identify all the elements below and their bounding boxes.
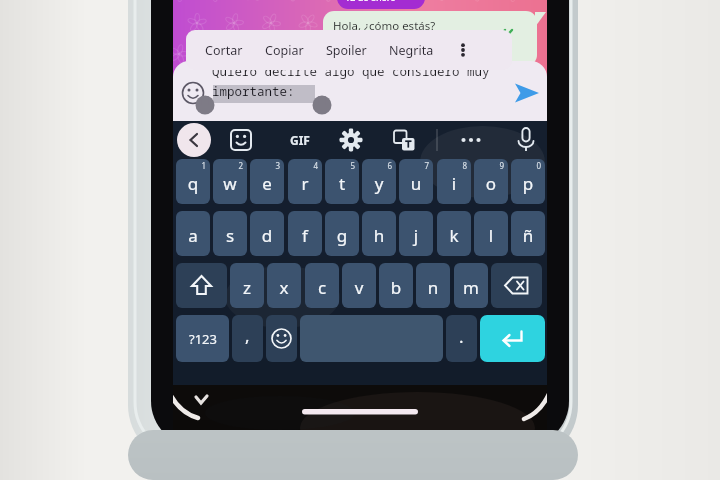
button[interactable]: x [267, 263, 301, 308]
staticText: 7 [399, 160, 429, 171]
button[interactable]: j [399, 211, 433, 256]
button[interactable]: a [176, 211, 210, 256]
staticText: q [176, 172, 210, 195]
staticText: 8 [437, 160, 467, 171]
button[interactable]: h [362, 211, 396, 256]
button[interactable]: Stickers [228, 127, 254, 153]
staticText: 9 [474, 160, 504, 171]
button[interactable]: w [213, 159, 247, 204]
staticText: Copiar [265, 42, 304, 59]
staticText: . [459, 325, 464, 348]
staticText: GIF [290, 132, 310, 148]
staticText: e [250, 172, 284, 195]
staticText: Spoiler [326, 42, 367, 59]
button[interactable]: z [230, 263, 264, 308]
staticText: 1 [176, 160, 206, 171]
button[interactable]: Copiar [254, 30, 315, 70]
button[interactable]: GIF [282, 127, 318, 153]
button[interactable]: y [362, 159, 396, 204]
staticText: y [362, 172, 396, 195]
button[interactable]: Traducir [391, 127, 417, 153]
staticText: g [325, 224, 359, 247]
button[interactable]: l [474, 211, 508, 256]
button[interactable]: Emoji [266, 315, 297, 362]
button[interactable]: ?123 [176, 315, 229, 362]
staticText: d [250, 224, 284, 247]
button[interactable]: Mayúsculas [176, 263, 227, 308]
button[interactable]: Enviar [480, 315, 545, 362]
staticText: s [213, 224, 247, 247]
staticText: v [342, 276, 376, 299]
button[interactable]: m [454, 263, 488, 308]
staticText: b [379, 276, 413, 299]
staticText: 12 de enero [345, 0, 396, 3]
staticText: p [511, 172, 545, 195]
button[interactable]: , [232, 315, 263, 362]
staticText: 0 [511, 160, 541, 171]
staticText: l [474, 224, 508, 247]
staticText: ?123 [189, 330, 217, 348]
staticText: a [176, 224, 210, 247]
button[interactable]: k [437, 211, 471, 256]
staticText: r [288, 172, 322, 195]
staticText: u [399, 172, 433, 195]
button[interactable]: d [250, 211, 284, 256]
button[interactable]: g [325, 211, 359, 256]
button[interactable]: Ajustes del teclado [338, 127, 364, 153]
staticText: 6 [362, 160, 392, 171]
staticText: z [230, 276, 264, 299]
button[interactable]: n [416, 263, 450, 308]
staticText: 5 [325, 160, 355, 171]
button[interactable]: q [176, 159, 210, 204]
staticText: t [325, 172, 359, 195]
button[interactable]: Dictado por voz [513, 126, 539, 152]
button[interactable]: v [342, 263, 376, 308]
button[interactable]: i [437, 159, 471, 204]
staticText: o [474, 172, 508, 195]
staticText: w [213, 172, 247, 195]
button[interactable]: t [325, 159, 359, 204]
button[interactable]: Más opciones [445, 30, 481, 70]
button[interactable]: e [250, 159, 284, 204]
button[interactable]: . [446, 315, 477, 362]
staticText: h [362, 224, 396, 247]
staticText: Negrita [389, 42, 434, 59]
staticText: f [288, 224, 322, 247]
button[interactable]: Spoiler [315, 30, 378, 70]
button[interactable]: Espacio [300, 315, 443, 362]
staticText: importante: [212, 83, 295, 100]
staticText: n [416, 276, 450, 299]
staticText: 2 [213, 160, 243, 171]
staticText: 4 [288, 160, 318, 171]
staticText: j [399, 224, 433, 247]
button[interactable]: c [305, 263, 339, 308]
staticText: , [245, 324, 250, 347]
button[interactable]: Más [458, 127, 484, 153]
button[interactable]: s [213, 211, 247, 256]
button[interactable]: Cortar [194, 30, 254, 70]
button[interactable]: b [379, 263, 413, 308]
button[interactable]: p [511, 159, 545, 204]
button[interactable]: Borrar [491, 263, 542, 308]
staticText: Hola, ¿cómo estás? [333, 18, 436, 34]
staticText: c [305, 276, 339, 299]
button[interactable]: r [288, 159, 322, 204]
staticText: k [437, 224, 471, 247]
staticText: Quiero decirte algo que considero muy [212, 63, 490, 80]
button[interactable]: Negrita [378, 30, 445, 70]
button[interactable]: Atrás [177, 123, 211, 157]
staticText: 3 [250, 160, 280, 171]
button[interactable]: u [399, 159, 433, 204]
staticText: Cortar [205, 42, 243, 59]
staticText: x [267, 276, 301, 299]
button[interactable]: o [474, 159, 508, 204]
staticText: ñ [511, 224, 545, 247]
staticText: m [454, 276, 488, 299]
button[interactable]: f [288, 211, 322, 256]
staticText: i [437, 172, 471, 195]
button[interactable]: ñ [511, 211, 545, 256]
